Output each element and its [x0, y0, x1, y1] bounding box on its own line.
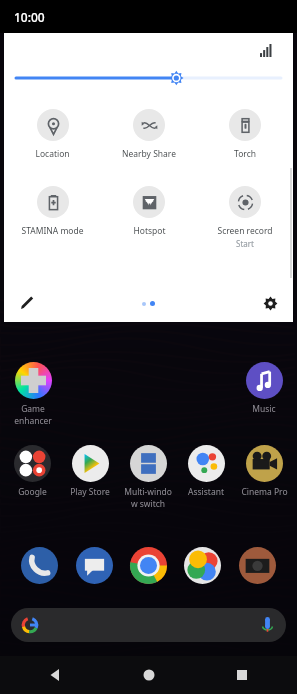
button[interactable]: Multi-windo w switch — [119, 443, 177, 512]
button[interactable]: Assistant — [177, 443, 235, 500]
staticText: Start — [236, 238, 254, 249]
staticText: Hotspot — [133, 225, 166, 237]
button[interactable]: Back — [40, 660, 70, 690]
staticText: Cinema Pro — [241, 486, 288, 498]
button[interactable]: STAMINA mode — [4, 184, 101, 239]
button[interactable]: App — [76, 547, 113, 584]
staticText: Screen record — [217, 225, 273, 237]
button[interactable]: Google — [4, 443, 61, 500]
staticText: Torch — [234, 148, 256, 160]
button[interactable]: Screen record — [197, 184, 293, 251]
staticText: Assistant — [188, 486, 224, 498]
staticText: Play Store — [70, 486, 110, 498]
staticText: Music — [252, 403, 276, 415]
staticText: 10:00 — [14, 9, 45, 25]
button[interactable]: Brightness — [16, 67, 281, 89]
button[interactable]: Game enhancer — [4, 360, 62, 429]
button[interactable]: Music — [235, 360, 293, 417]
staticText: Google — [18, 486, 47, 498]
button[interactable]: Torch — [197, 107, 293, 162]
staticText: Game enhancer — [14, 403, 52, 427]
other: Signal — [260, 44, 273, 57]
staticText: Multi-windo w switch — [124, 486, 172, 510]
button[interactable]: Location — [4, 107, 101, 162]
button[interactable]: App — [130, 547, 167, 584]
button[interactable]: Edit — [14, 290, 40, 316]
button[interactable]: Home — [134, 660, 164, 690]
button[interactable]: Hotspot — [101, 184, 197, 239]
button[interactable]: Cinema Pro — [235, 443, 293, 500]
button[interactable]: App — [184, 547, 221, 584]
button[interactable]: Settings — [257, 290, 283, 316]
button[interactable]: App — [239, 547, 276, 584]
button[interactable]: App — [21, 547, 58, 584]
staticText: Nearby Share — [122, 148, 176, 160]
staticText: Location — [35, 148, 70, 160]
staticText: STAMINA mode — [21, 225, 84, 237]
button[interactable]: Nearby Share — [101, 107, 197, 162]
button[interactable]: Search — [11, 608, 286, 642]
button[interactable]: Recents — [227, 660, 257, 690]
button[interactable]: Play Store — [61, 443, 119, 500]
